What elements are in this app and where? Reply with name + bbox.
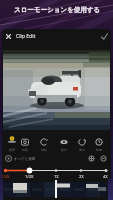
staticText: 1/4X [1,174,10,179]
button[interactable] [90,134,107,152]
staticText: 速度 [9,148,15,152]
staticText: スローモーションを使用する [14,6,100,14]
staticText: 4X [103,174,108,179]
staticText: 回転 [41,148,47,152]
button[interactable] [55,134,72,152]
staticText: 写真 [22,148,28,152]
staticText: 2X [79,174,84,179]
button[interactable] [16,134,33,152]
staticText: 復元 [79,148,85,152]
staticText: 表示 [61,148,67,152]
staticText: すべてに適用 [14,157,36,161]
button[interactable] [35,134,52,152]
staticText: 1X [54,174,59,179]
button[interactable] [85,153,97,164]
button[interactable]: すべてに適用 [4,153,46,164]
button[interactable] [97,153,109,164]
button[interactable] [3,134,20,152]
button[interactable] [3,31,14,42]
button[interactable] [98,31,110,42]
button[interactable] [2,181,111,197]
staticText: Clip Edit [16,33,36,40]
staticText: 時間 [96,148,102,152]
button[interactable] [73,134,90,152]
staticText: 1/2X [25,174,34,179]
